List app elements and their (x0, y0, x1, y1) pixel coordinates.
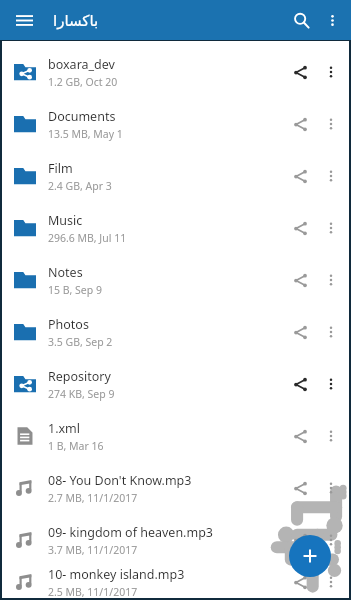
staticText: Notes (48, 264, 83, 281)
button[interactable]: Share (283, 523, 317, 557)
staticText: 15 B, Sep 9 (48, 283, 102, 297)
button[interactable]: Add (289, 535, 331, 577)
button[interactable]: Share (283, 263, 317, 297)
staticText: 10- monkey island.mp3 (48, 566, 185, 583)
button[interactable]: 1.xml (2, 410, 349, 462)
button[interactable]: Navigation menu (8, 4, 40, 36)
staticText: 1.2 GB, Oct 20 (48, 75, 118, 89)
staticText: Photos (48, 316, 89, 333)
staticText: 296.6 MB, Jul 11 (48, 231, 127, 245)
button[interactable]: 08- You Don't Know.mp3 (2, 462, 349, 514)
staticText: Repository (48, 368, 111, 385)
staticText: Music (48, 212, 83, 229)
button[interactable]: More options (317, 5, 347, 35)
button[interactable]: Documents (2, 98, 349, 150)
staticText: 1.xml (48, 420, 81, 437)
staticText: 2.7 MB, 11/1/2017 (48, 491, 138, 505)
staticText: باکسارا (53, 12, 99, 29)
button[interactable]: Photos (2, 306, 349, 358)
staticText: 3.7 MB, 11/1/2017 (48, 543, 138, 557)
staticText: 09- kingdom of heaven.mp3 (48, 524, 213, 541)
button[interactable]: Share (283, 566, 317, 598)
button[interactable]: More options (317, 214, 345, 242)
staticText: boxara_dev (48, 56, 115, 73)
button[interactable]: Search (285, 4, 317, 36)
button[interactable]: Notes (2, 254, 349, 306)
button[interactable]: 10- monkey island.mp3 (2, 566, 349, 598)
staticText: 2.5 MB, 11/1/2017 (48, 585, 138, 598)
button[interactable]: More options (317, 422, 345, 450)
button[interactable]: Share (283, 367, 317, 401)
button[interactable]: Share (283, 107, 317, 141)
button[interactable]: Film (2, 150, 349, 202)
button[interactable]: Repository (2, 358, 349, 410)
button[interactable]: More options (317, 568, 345, 596)
button[interactable]: More options (317, 58, 345, 86)
staticText: 13.5 MB, May 1 (48, 127, 123, 141)
staticText: 08- You Don't Know.mp3 (48, 472, 192, 489)
staticText: 3.5 GB, Sep 2 (48, 335, 113, 349)
button[interactable]: More options (317, 266, 345, 294)
button[interactable]: More options (317, 370, 345, 398)
button[interactable]: More options (317, 526, 345, 554)
button[interactable]: Music (2, 202, 349, 254)
button[interactable]: Share (283, 471, 317, 505)
staticText: Film (48, 160, 73, 177)
button[interactable]: More options (317, 162, 345, 190)
staticText: 1 B, Mar 16 (48, 439, 104, 453)
button[interactable]: Share (283, 419, 317, 453)
button[interactable]: Share (283, 55, 317, 89)
button[interactable]: More options (317, 474, 345, 502)
button[interactable]: Share (283, 211, 317, 245)
button[interactable]: boxara_dev (2, 46, 349, 98)
staticText: Documents (48, 108, 116, 125)
staticText: 274 KB, Sep 9 (48, 387, 115, 401)
button[interactable]: Share (283, 159, 317, 193)
button[interactable]: Share (283, 315, 317, 349)
button[interactable]: More options (317, 110, 345, 138)
button[interactable]: More options (317, 318, 345, 346)
staticText: 2.4 GB, Apr 3 (48, 179, 112, 193)
button[interactable]: 09- kingdom of heaven.mp3 (2, 514, 349, 566)
